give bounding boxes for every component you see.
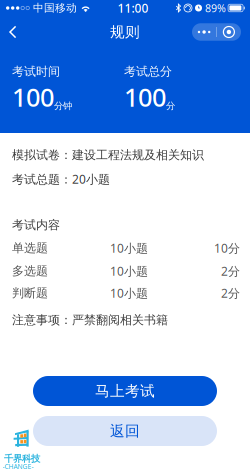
staticText: 分钟 <box>54 100 72 112</box>
staticText: 2分 <box>221 285 240 301</box>
button[interactable]: 返回 <box>33 416 217 446</box>
staticText: 考试总题：20小题 <box>12 171 110 187</box>
staticText: 10分 <box>214 240 240 256</box>
button[interactable]: 更多 <box>192 23 241 41</box>
staticText: 10小题 <box>110 263 148 279</box>
staticText: 判断题 <box>12 286 48 300</box>
staticText: 注意事项：严禁翻阅相关书籍 <box>12 313 168 327</box>
staticText: 100 <box>12 80 54 114</box>
staticText: 11:00 <box>118 0 149 16</box>
staticText: 2分 <box>221 263 240 279</box>
staticText: 单选题 <box>12 241 48 255</box>
staticText: 模拟试卷：建设工程法规及相关知识 <box>12 148 204 162</box>
staticText: 中国移动 <box>33 1 77 14</box>
staticText: 100 <box>124 80 166 114</box>
staticText: 分 <box>166 100 175 112</box>
staticText: 千界科技 <box>4 453 40 464</box>
staticText: 10小题 <box>110 240 148 256</box>
staticText: 考试时间 <box>12 64 60 79</box>
staticText: 马上考试 <box>95 382 155 400</box>
button[interactable]: 返回 <box>0 17 28 46</box>
staticText: 89% <box>205 1 226 15</box>
staticText: -CHANGE- <box>2 462 33 469</box>
staticText: 考试总分 <box>124 64 172 79</box>
staticText: 规则 <box>110 23 140 41</box>
staticText: 考试内容 <box>12 218 60 232</box>
staticText: 返回 <box>110 422 140 440</box>
staticText: 多选题 <box>12 264 48 278</box>
button[interactable]: 马上考试 <box>33 376 217 406</box>
staticText: 10小题 <box>110 285 148 301</box>
